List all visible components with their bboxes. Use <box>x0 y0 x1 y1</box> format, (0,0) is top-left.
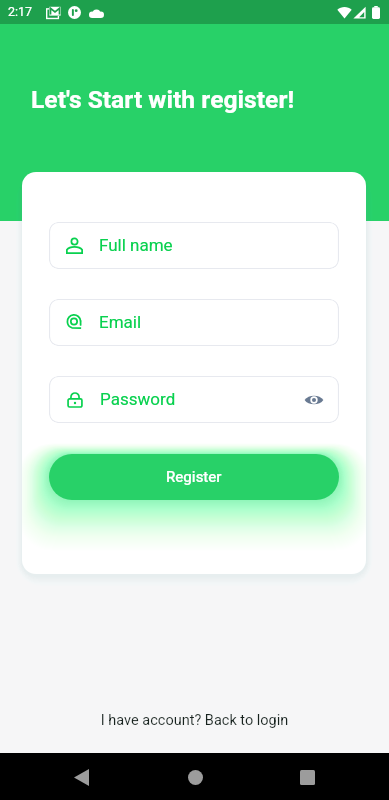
button[interactable]: Home <box>175 757 215 797</box>
staticText: 2:17 <box>8 3 33 21</box>
staticText: Register <box>166 466 222 488</box>
button[interactable]: Back <box>61 757 101 797</box>
staticText: Let's Start with register! <box>31 82 295 118</box>
button[interactable]: I have account? Back to login <box>0 708 389 733</box>
button[interactable]: Recent apps <box>287 757 327 797</box>
staticText: Full name <box>99 233 173 258</box>
button[interactable]: Show password <box>302 388 326 412</box>
staticText: Email <box>99 310 142 335</box>
staticText: Password <box>100 387 176 412</box>
button[interactable]: Full name <box>49 222 339 269</box>
button[interactable]: Register <box>49 454 339 500</box>
button[interactable]: Password <box>49 376 339 423</box>
button[interactable]: Email <box>49 299 339 346</box>
